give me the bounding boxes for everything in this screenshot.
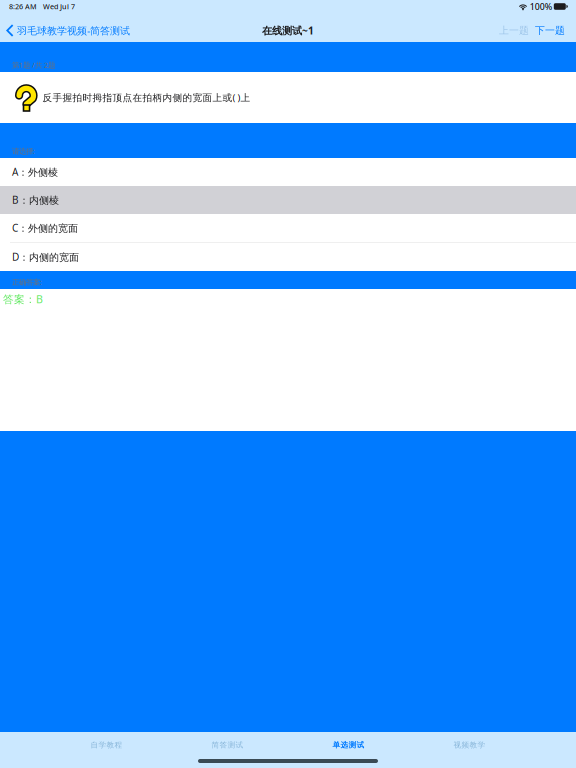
staticText: D：内侧的宽面 — [12, 250, 79, 264]
staticText: 8:26 AM Wed Jul 7 — [9, 2, 75, 11]
staticText: 100% — [528, 0, 554, 12]
staticText: 羽毛球教学视频-简答测试 — [17, 24, 130, 37]
button[interactable]: 视频教学 — [409, 732, 530, 758]
button[interactable]: B：内侧棱 — [0, 186, 576, 214]
button[interactable]: 自学教程 — [46, 732, 167, 758]
staticText: A：外侧棱 — [12, 165, 58, 179]
staticText: 答案：B — [3, 292, 43, 306]
button[interactable]: 简答测试 — [167, 732, 288, 758]
staticText: 第1题 /共 2题 — [12, 60, 55, 70]
staticText: 自学教程 — [90, 740, 122, 750]
button[interactable]: 上一题 — [499, 21, 529, 40]
staticText: 单选测试 — [332, 740, 364, 750]
button[interactable]: D：内侧的宽面 — [0, 243, 576, 271]
button[interactable]: C：外侧的宽面 — [0, 214, 576, 242]
staticText: 正确答案: — [12, 277, 42, 287]
button[interactable]: 单选测试 — [288, 732, 409, 758]
staticText: B：内侧棱 — [12, 193, 59, 207]
staticText: 在线测试~1 — [262, 24, 314, 37]
button[interactable]: 羽毛球教学视频-简答测试 — [6, 22, 130, 39]
button[interactable]: 下一题 — [529, 21, 565, 40]
staticText: 视频教学 — [453, 740, 485, 750]
staticText: 反手握拍时拇指顶点在拍柄内侧的宽面上或( )上 — [42, 91, 250, 104]
button[interactable]: A：外侧棱 — [0, 158, 576, 186]
staticText: 上一题 — [499, 24, 529, 37]
staticText: 下一题 — [535, 24, 565, 37]
staticText: C：外侧的宽面 — [12, 221, 78, 235]
staticText: 请选择: — [12, 146, 35, 156]
staticText: 简答测试 — [211, 740, 243, 750]
